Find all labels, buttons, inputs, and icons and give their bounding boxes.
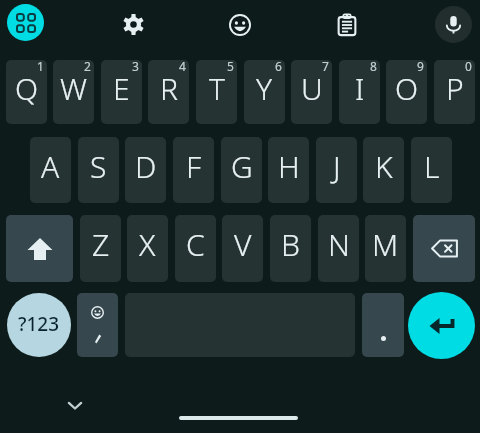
- button[interactable]: G: [221, 137, 262, 203]
- button[interactable]: Shift: [6, 215, 73, 282]
- staticText: 4: [179, 60, 186, 74]
- staticText: P: [446, 68, 464, 109]
- staticText: U: [301, 68, 323, 109]
- button[interactable]: F: [173, 137, 214, 203]
- button[interactable]: K: [363, 137, 404, 203]
- button[interactable]: L: [411, 137, 452, 203]
- button[interactable]: E: [101, 60, 142, 124]
- staticText: G: [231, 146, 253, 187]
- button[interactable]: Settings: [117, 8, 149, 40]
- button[interactable]: Apps: [7, 4, 44, 41]
- staticText: T: [209, 68, 225, 109]
- button[interactable]: Q: [6, 60, 47, 124]
- button[interactable]: T: [196, 60, 237, 124]
- button[interactable]: Enter: [408, 292, 475, 359]
- staticText: 1: [37, 60, 44, 74]
- staticText: S: [90, 146, 107, 187]
- button[interactable]: R: [148, 60, 189, 124]
- button[interactable]: Clipboard: [331, 9, 363, 41]
- button[interactable]: Backspace: [413, 215, 475, 282]
- staticText: ?123: [18, 311, 60, 337]
- button[interactable]: N: [318, 215, 359, 282]
- button[interactable]: X: [127, 215, 168, 282]
- staticText: Q: [15, 68, 39, 109]
- staticText: N: [328, 224, 350, 265]
- staticText: 7: [322, 60, 329, 74]
- button[interactable]: U: [291, 60, 332, 124]
- button[interactable]: B: [270, 215, 311, 282]
- button[interactable]: H: [268, 137, 309, 203]
- staticText: 0: [465, 60, 472, 74]
- staticText: L: [424, 146, 440, 187]
- staticText: R: [160, 68, 178, 109]
- button[interactable]: C: [175, 215, 216, 282]
- button[interactable]: Hide keyboard: [61, 391, 89, 419]
- button[interactable]: M: [365, 215, 406, 282]
- staticText: J: [333, 146, 341, 187]
- button[interactable]: V: [222, 215, 263, 282]
- staticText: 6: [275, 60, 282, 74]
- button[interactable]: Emoji: [224, 9, 256, 41]
- staticText: D: [135, 146, 157, 187]
- staticText: I: [355, 68, 365, 109]
- button[interactable]: I: [339, 60, 380, 124]
- staticText: F: [186, 146, 202, 187]
- staticText: O: [395, 68, 419, 109]
- staticText: X: [139, 224, 156, 265]
- staticText: Y: [256, 68, 273, 109]
- staticText: K: [375, 146, 393, 187]
- button[interactable]: Z: [80, 215, 121, 282]
- button[interactable]: P: [434, 60, 475, 124]
- staticText: 5: [227, 60, 234, 74]
- staticText: 2: [84, 60, 91, 74]
- button[interactable]: S: [78, 137, 119, 203]
- button[interactable]: W: [53, 60, 94, 124]
- staticText: H: [278, 146, 300, 187]
- button[interactable]: A: [30, 137, 71, 203]
- button[interactable]: Voice input: [435, 6, 472, 43]
- button[interactable]: Y: [244, 60, 285, 124]
- button[interactable]: ?123: [7, 293, 71, 357]
- staticText: M: [372, 224, 399, 265]
- staticText: V: [234, 224, 252, 265]
- staticText: 3: [132, 60, 139, 74]
- staticText: C: [186, 224, 205, 265]
- button[interactable]: Period: [362, 293, 404, 357]
- staticText: 8: [370, 60, 377, 74]
- button[interactable]: J: [316, 137, 357, 203]
- staticText: 9: [417, 60, 424, 74]
- button[interactable]: D: [125, 137, 166, 203]
- staticText: A: [41, 146, 60, 187]
- staticText: W: [60, 68, 87, 109]
- staticText: Z: [92, 224, 110, 265]
- button[interactable]: O: [386, 60, 427, 124]
- staticText: B: [281, 224, 300, 265]
- button[interactable]: Emoji and comma: [77, 293, 118, 357]
- staticText: E: [113, 68, 130, 109]
